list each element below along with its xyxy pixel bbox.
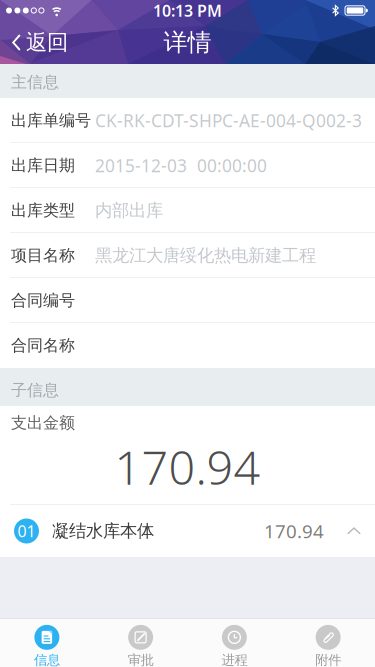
staticText: 出库日期 (11, 156, 75, 175)
button[interactable]: 附件 (281, 619, 375, 667)
staticText: 出库类型 (11, 201, 75, 220)
button[interactable]: 01 (0, 505, 375, 557)
staticText: 详情 (163, 28, 211, 57)
staticText: 主信息 (11, 72, 59, 92)
button[interactable]: 返回 (0, 21, 76, 64)
staticText: 支出金额 (11, 413, 75, 433)
staticText: 进程 (221, 652, 247, 667)
staticText: 01 (17, 520, 35, 542)
staticText: 黑龙江大唐绥化热电新建工程 (95, 245, 316, 266)
staticText: 审批 (128, 652, 154, 667)
staticText: 子信息 (11, 380, 59, 400)
staticText: 内部出库 (95, 200, 163, 221)
staticText: 170.94 (264, 519, 324, 543)
staticText: 合同编号 (11, 291, 75, 310)
staticText: 凝结水库本体 (52, 520, 154, 542)
button[interactable]: 进程 (187, 619, 281, 667)
staticText: 170.94 (114, 436, 260, 498)
staticText: 10:13 PM (153, 0, 222, 21)
staticText: 2015-12-03 00:00:00 (95, 154, 267, 177)
button[interactable]: 信息 (0, 619, 94, 667)
staticText: 信息 (34, 652, 60, 667)
staticText: 附件 (315, 652, 341, 667)
staticText: 出库单编号 (11, 111, 91, 130)
button[interactable]: 审批 (94, 619, 188, 667)
staticText: 项目名称 (11, 246, 75, 265)
staticText: CK-RK-CDT-SHPC-AE-004-Q002-3 (95, 109, 362, 132)
staticText: 返回 (26, 29, 68, 56)
staticText: 合同名称 (11, 336, 75, 355)
